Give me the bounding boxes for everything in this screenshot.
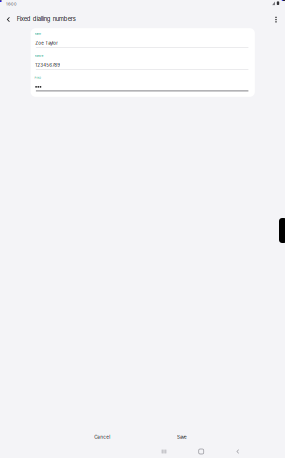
staticText: 16:00 (6, 2, 17, 6)
button[interactable]: Back (227, 445, 249, 457)
staticText: Save (177, 434, 187, 440)
staticText: Fixed dialling numbers (17, 15, 76, 22)
staticText: Zoe Taylor (35, 40, 58, 46)
staticText: Cancel (94, 434, 110, 440)
button[interactable]: Save (152, 430, 212, 444)
staticText: Name (34, 32, 40, 35)
button[interactable]: Home (190, 445, 212, 457)
button[interactable]: Recent apps (153, 445, 175, 457)
button[interactable]: Back (3, 12, 15, 26)
button[interactable]: More options (270, 13, 282, 27)
button[interactable]: Cancel (72, 430, 132, 444)
staticText: PIN2 (34, 76, 41, 79)
staticText: Number (34, 54, 43, 57)
staticText: 123456789 (35, 62, 60, 68)
